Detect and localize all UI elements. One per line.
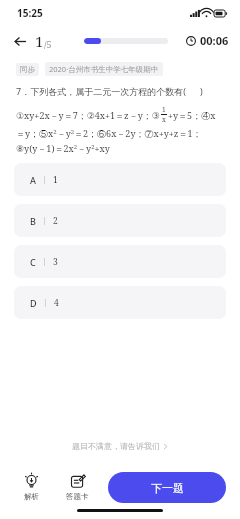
- staticText: 7．下列各式，属于二元一次方程的个数有( ): [16, 85, 203, 97]
- staticText: C: [30, 256, 36, 268]
- button[interactable]: D: [14, 286, 226, 319]
- staticText: A: [30, 174, 36, 186]
- staticText: ⑧y(y－1)＝2x2－y2+xy: [16, 142, 110, 154]
- staticText: 2020·台州市书生中学七年级期中: [49, 64, 159, 74]
- button[interactable]: 答题卡: [60, 472, 94, 503]
- button[interactable]: C: [14, 245, 226, 278]
- staticText: 答题卡: [66, 492, 89, 501]
- button[interactable]: 题目不满意，请告诉我们: [66, 438, 174, 454]
- button[interactable]: Back: [8, 29, 32, 53]
- button[interactable]: 同步: [20, 65, 35, 74]
- staticText: 3: [53, 256, 58, 268]
- button[interactable]: 下一题: [108, 472, 226, 503]
- staticText: 00:06: [200, 33, 229, 48]
- staticText: 4: [54, 297, 59, 309]
- staticText: 题目不满意，请告诉我们: [72, 441, 160, 451]
- staticText: ＝y；⑤x2－y2＝2；⑥6x－2y；⑦x+y+z＝1；: [16, 127, 202, 139]
- staticText: 解析: [24, 492, 39, 501]
- staticText: /5: [44, 38, 52, 50]
- button[interactable]: 解析: [14, 472, 48, 503]
- staticText: 下一题: [151, 481, 184, 495]
- staticText: 1: [35, 31, 44, 51]
- staticText: 15:25: [17, 6, 43, 20]
- staticText: 1: [162, 105, 166, 114]
- staticText: 2: [53, 215, 58, 227]
- staticText: 同步: [20, 65, 35, 74]
- staticText: 1: [53, 174, 58, 186]
- button[interactable]: 2020·台州市书生中学七年级期中: [49, 64, 159, 74]
- staticText: x: [162, 115, 166, 124]
- staticText: D: [30, 297, 37, 309]
- staticText: +y＝5；④x: [168, 109, 216, 121]
- button[interactable]: A: [14, 163, 226, 196]
- button[interactable]: B: [14, 204, 226, 237]
- staticText: ①xy+2x－y＝7；②4x+1＝z－y；③: [16, 109, 160, 121]
- staticText: B: [30, 215, 36, 227]
